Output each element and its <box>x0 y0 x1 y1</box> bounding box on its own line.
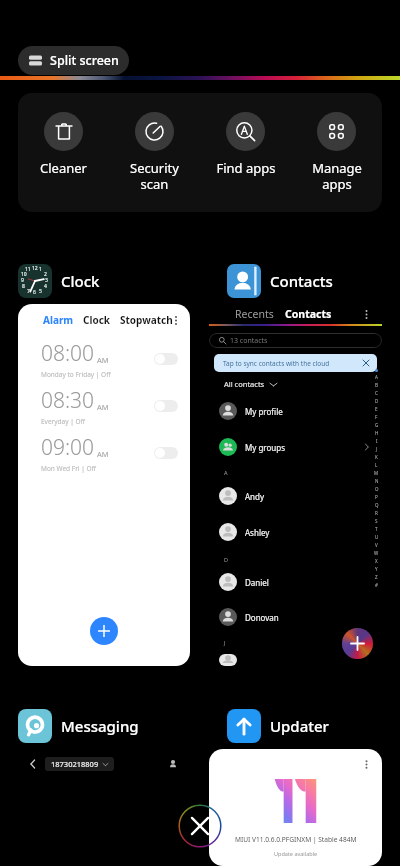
button[interactable] <box>154 353 178 365</box>
staticText: K <box>375 454 378 460</box>
staticText: F <box>375 414 378 420</box>
staticText: C <box>375 390 378 396</box>
button[interactable]: Manage apps <box>291 112 382 192</box>
staticText: L <box>375 462 378 468</box>
staticText: 09:00 <box>41 433 95 462</box>
staticText: AM <box>97 449 109 459</box>
staticText: W <box>374 550 379 556</box>
staticText: All contacts <box>224 379 265 389</box>
staticText: Security scan <box>130 159 179 192</box>
button[interactable]: 12 <box>18 264 100 298</box>
button[interactable]: Cleaner <box>18 112 109 177</box>
staticText: Messaging <box>61 716 139 736</box>
staticText: G <box>375 422 379 428</box>
staticText: AM <box>97 355 109 365</box>
button[interactable]: Ashley <box>219 523 370 541</box>
staticText: 08:30 <box>41 386 95 415</box>
staticText: 1 <box>39 266 42 273</box>
button[interactable]: Recents <box>235 307 274 321</box>
staticText: Updater <box>270 716 329 736</box>
button[interactable]: Add alarm <box>90 617 118 645</box>
button[interactable]: Security scan <box>109 112 200 192</box>
button[interactable]: 18730218809 <box>45 757 114 771</box>
staticText: Manage apps <box>312 159 362 192</box>
staticText: My profile <box>245 406 283 417</box>
staticText: J <box>224 639 226 646</box>
staticText: 8 <box>22 283 25 290</box>
staticText: B <box>375 382 378 388</box>
staticText: Daniel <box>245 577 269 588</box>
staticText: MIUI V11.0.6.0.PFGINXM | Stable 484M <box>235 835 357 844</box>
staticText: 7 <box>27 288 30 295</box>
button[interactable] <box>154 447 178 459</box>
button[interactable]: My groups <box>219 438 370 456</box>
staticText: 11 <box>25 266 31 273</box>
staticText: J <box>376 446 378 452</box>
button[interactable]: Split screen <box>18 46 129 75</box>
staticText: 12 <box>32 265 38 272</box>
button[interactable]: All contacts <box>224 379 277 389</box>
staticText: 2 <box>44 271 47 278</box>
staticText: Everyday | Off <box>41 417 86 426</box>
button[interactable]: Updater <box>227 709 329 743</box>
staticText: X <box>375 558 378 564</box>
staticText: Clock <box>61 271 100 291</box>
staticText: Y <box>375 566 378 572</box>
staticText: Monday to Friday | Off <box>41 370 111 379</box>
staticText: My groups <box>245 442 286 453</box>
staticText: Cleaner <box>40 159 87 177</box>
button[interactable]: Stopwatch <box>120 313 173 327</box>
button[interactable]: More options <box>359 757 373 771</box>
staticText: Ashley <box>245 527 270 538</box>
staticText: I <box>376 438 378 444</box>
staticText: U <box>375 534 379 540</box>
button[interactable]: Daniel <box>219 573 370 591</box>
staticText: Andy <box>245 491 265 502</box>
button[interactable]: Alarm <box>43 313 74 327</box>
button[interactable]: Back <box>26 757 40 771</box>
staticText: 08:00 <box>41 339 95 368</box>
button[interactable]: 08:30 <box>41 386 178 426</box>
staticText: 6 <box>33 289 36 296</box>
staticText: 4 <box>44 283 47 290</box>
staticText: AM <box>97 402 109 412</box>
button[interactable]: Contacts <box>227 264 333 298</box>
staticText: # <box>375 582 378 588</box>
staticText: Q <box>375 502 379 508</box>
button[interactable]: Clock <box>83 313 111 327</box>
button[interactable]: Contact details <box>166 757 180 771</box>
staticText: 9 <box>21 277 24 284</box>
staticText: M <box>374 470 379 476</box>
staticText: A <box>375 374 378 380</box>
staticText: 3 <box>45 277 48 284</box>
button[interactable]: Tap to sync contacts with the cloud <box>214 354 377 372</box>
button[interactable]: My profile <box>219 402 370 420</box>
button[interactable]: Messaging <box>18 709 139 743</box>
staticText: 5 <box>39 288 42 295</box>
button[interactable]: 09:00 <box>41 433 178 473</box>
button[interactable]: Find apps <box>200 112 291 177</box>
staticText: T <box>375 526 378 532</box>
staticText: N <box>375 478 379 484</box>
staticText: Tap to sync contacts with the cloud <box>223 359 330 368</box>
staticText: O <box>375 486 379 492</box>
staticText: Update available <box>274 850 318 857</box>
button[interactable]: Close all <box>177 803 223 849</box>
button[interactable]: More options <box>359 307 373 321</box>
button[interactable] <box>154 400 178 412</box>
staticText: Mon Wed Fri | Off <box>41 464 97 473</box>
staticText: P <box>375 494 378 500</box>
staticText: H <box>375 430 379 436</box>
button[interactable]: Andy <box>219 487 370 505</box>
staticText: E <box>375 406 378 412</box>
button[interactable]: Donovan <box>219 608 370 626</box>
button[interactable]: 13 contacts <box>209 333 382 348</box>
staticText: D <box>375 398 379 404</box>
button[interactable]: More options <box>173 313 179 327</box>
staticText: D <box>224 556 229 563</box>
button[interactable] <box>219 654 370 666</box>
button[interactable]: Contacts <box>285 307 332 321</box>
button[interactable]: 08:00 <box>41 339 178 379</box>
button[interactable]: Add contact <box>342 628 373 659</box>
staticText: Z <box>375 574 378 580</box>
